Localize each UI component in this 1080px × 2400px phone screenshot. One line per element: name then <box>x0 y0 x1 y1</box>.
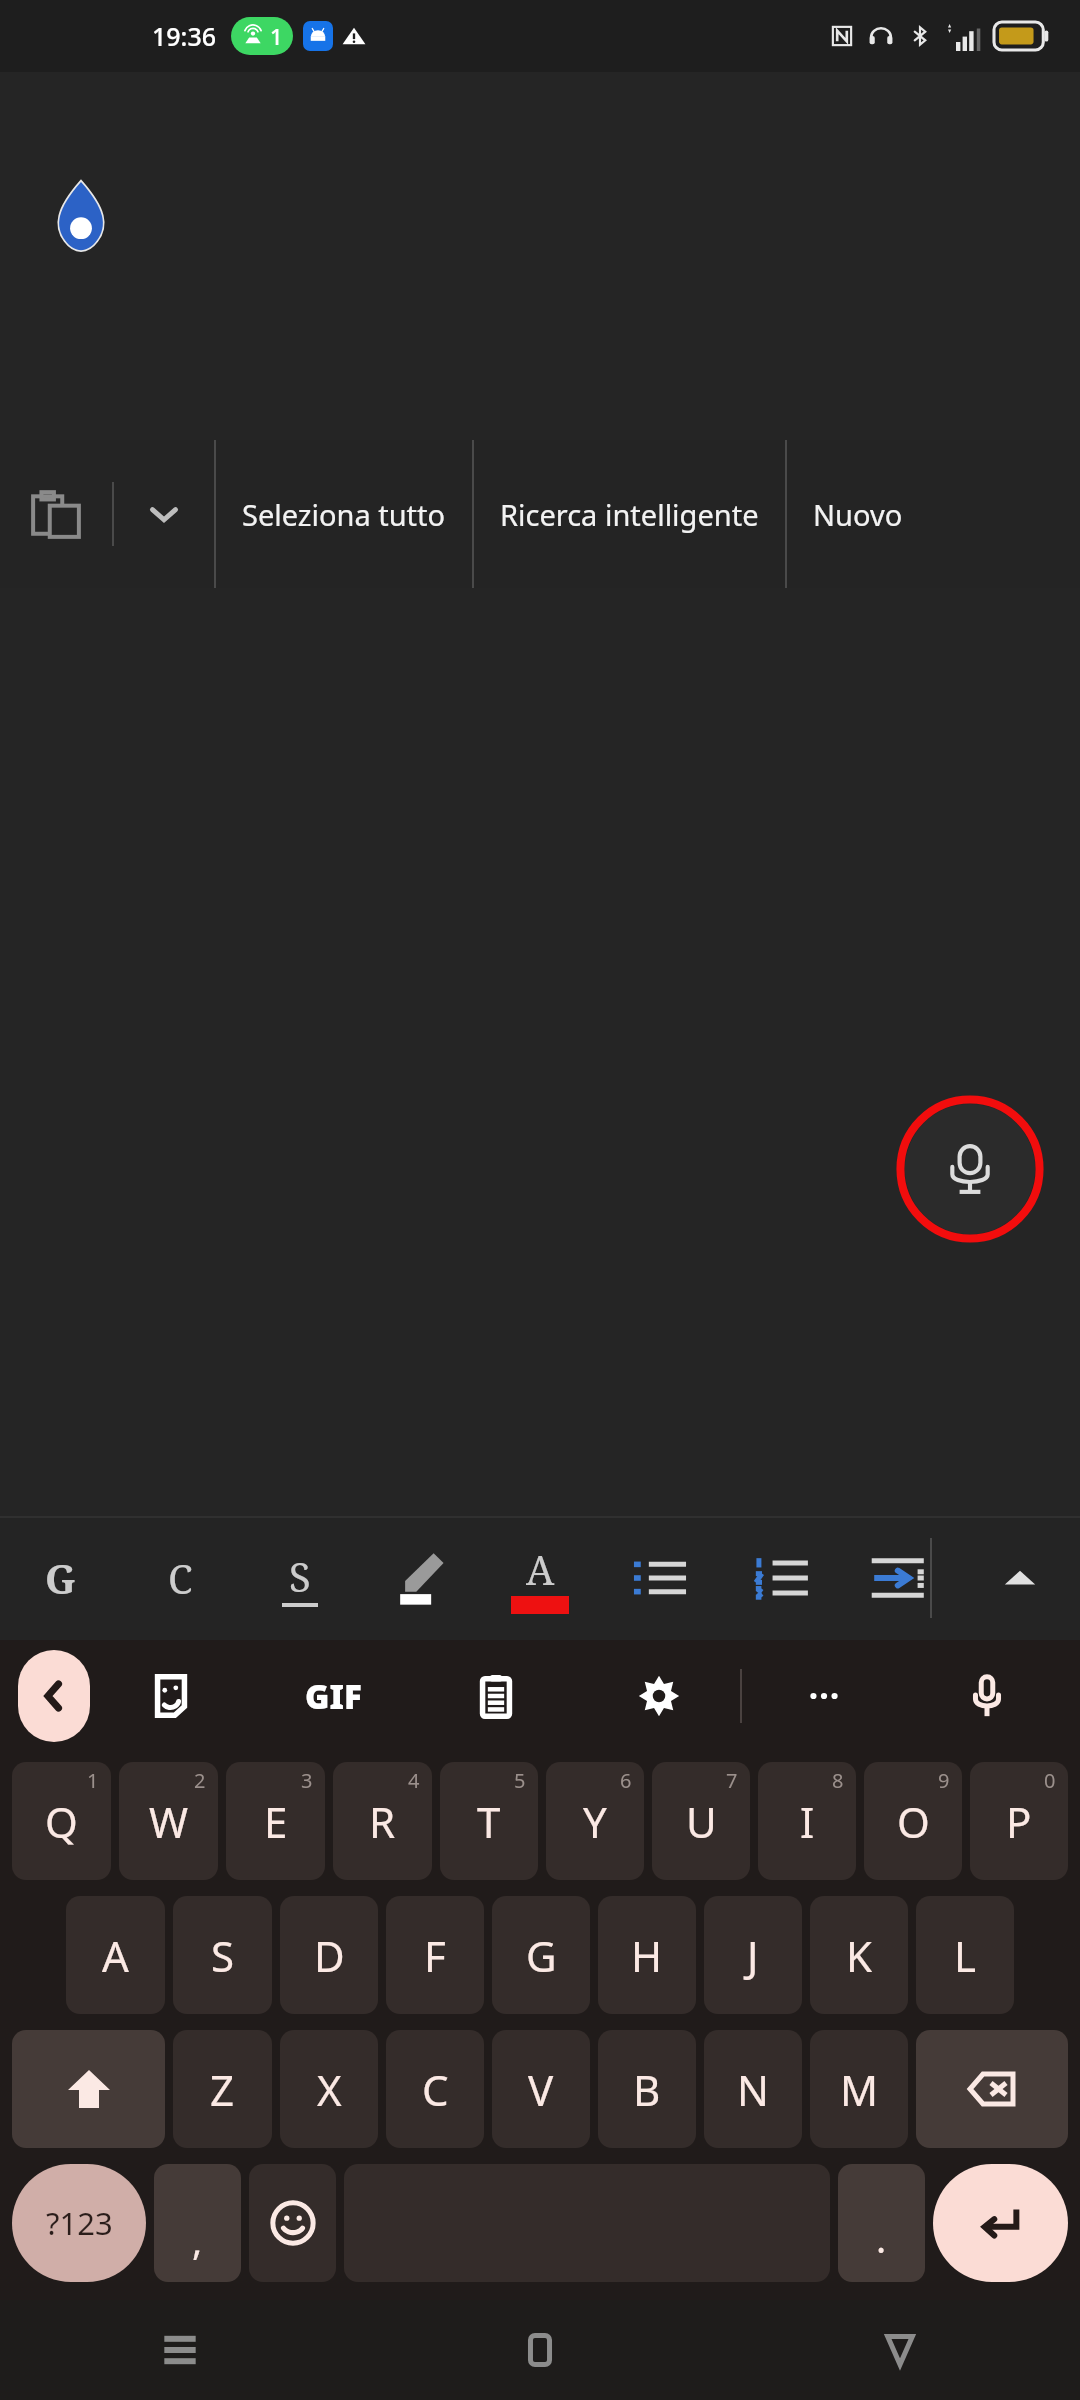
staticText: E <box>264 1793 288 1850</box>
button[interactable]: Voice typing <box>905 1640 1068 1752</box>
button[interactable]: Stickers <box>90 1640 252 1752</box>
button[interactable]: Seleziona tutto <box>216 440 472 588</box>
button[interactable]: Enter <box>933 2164 1068 2282</box>
button[interactable]: Format <box>840 1516 960 1640</box>
staticText: Z <box>210 2061 235 2118</box>
staticText: GIF <box>305 1674 362 1719</box>
button[interactable]: J <box>704 1896 802 2014</box>
button[interactable]: X <box>280 2030 378 2148</box>
button[interactable]: 4 <box>333 1762 432 1880</box>
button[interactable]: 9 <box>864 1762 962 1880</box>
button[interactable]: Z <box>173 2030 272 2148</box>
button[interactable]: S <box>173 1896 272 2014</box>
button[interactable]: Back <box>18 1650 90 1742</box>
button[interactable]: Format <box>480 1516 600 1640</box>
button[interactable]: Emoji <box>249 2164 336 2282</box>
staticText: C <box>422 2061 449 2118</box>
button[interactable]: Shift <box>12 2030 165 2148</box>
button[interactable]: Paste <box>0 440 112 588</box>
button[interactable]: K <box>810 1896 908 2014</box>
button[interactable]: Format <box>120 1516 240 1640</box>
button[interactable]: L <box>916 1896 1014 2014</box>
button[interactable]: B <box>598 2030 696 2148</box>
staticText: U <box>686 1793 717 1850</box>
button[interactable]: Format <box>600 1516 720 1640</box>
staticText: T <box>477 1793 501 1850</box>
button[interactable]: 2 <box>119 1762 218 1880</box>
staticText: L <box>954 1927 977 1984</box>
staticText: 4 <box>408 1767 420 1794</box>
button[interactable]: , <box>154 2164 241 2282</box>
button[interactable]: A <box>66 1896 165 2014</box>
staticText: K <box>846 1927 872 1984</box>
button[interactable]: Home <box>360 2300 720 2400</box>
button[interactable]: Format <box>720 1516 840 1640</box>
button[interactable]: Settings <box>577 1640 740 1752</box>
staticText: 5 <box>514 1767 526 1794</box>
button[interactable]: Backspace <box>916 2030 1068 2148</box>
staticText: S <box>289 1549 311 1603</box>
staticText: W <box>149 1793 189 1850</box>
button[interactable]: 6 <box>546 1762 644 1880</box>
staticText: 1 <box>270 21 283 51</box>
button[interactable]: 8 <box>758 1762 856 1880</box>
staticText: S <box>211 1927 235 1984</box>
button[interactable]: Ricerca intelligente <box>474 440 785 588</box>
staticText: 7 <box>726 1767 738 1794</box>
staticText: A <box>102 1927 129 1984</box>
button[interactable]: More paste options <box>114 440 214 588</box>
staticText: 19:36 <box>152 19 217 53</box>
staticText: Q <box>45 1793 78 1850</box>
button[interactable]: D <box>280 1896 378 2014</box>
staticText: V <box>528 2061 554 2118</box>
staticText: 2 <box>194 1767 206 1794</box>
button[interactable]: Format <box>240 1516 360 1640</box>
button[interactable]: H <box>598 1896 696 2014</box>
button[interactable]: C <box>386 2030 484 2148</box>
staticText: Nuovo commento <box>813 495 1054 534</box>
staticText: . <box>876 2212 887 2264</box>
staticText: Seleziona tutto <box>242 495 446 534</box>
button[interactable]: GIF <box>252 1640 414 1752</box>
button[interactable]: Format <box>360 1516 480 1640</box>
button[interactable]: Format <box>960 1516 1080 1640</box>
button[interactable]: N <box>704 2030 802 2148</box>
staticText: J <box>747 1927 759 1984</box>
button[interactable]: Nuovo commento <box>787 440 1080 588</box>
staticText: R <box>369 1793 396 1850</box>
button[interactable]: 0 <box>970 1762 1068 1880</box>
staticText: 1 <box>87 1767 99 1794</box>
staticText: M <box>840 2061 879 2118</box>
button[interactable]: 3 <box>226 1762 325 1880</box>
button[interactable]: 5 <box>440 1762 538 1880</box>
button[interactable]: 7 <box>652 1762 750 1880</box>
button[interactable]: ?123 <box>12 2164 146 2282</box>
staticText: 3 <box>301 1767 313 1794</box>
button[interactable]: G <box>492 1896 590 2014</box>
staticText: X <box>317 2061 342 2118</box>
staticText: H <box>631 1927 663 1984</box>
staticText: D <box>314 1927 345 1984</box>
button[interactable]: Voice input <box>896 1095 1044 1243</box>
button[interactable]: Back <box>720 2300 1080 2400</box>
staticText: O <box>897 1793 930 1850</box>
button[interactable]: Clipboard <box>414 1640 577 1752</box>
staticText: G <box>526 1927 557 1984</box>
staticText: I <box>800 1793 815 1850</box>
button[interactable]: Recents <box>0 2300 360 2400</box>
staticText: , <box>192 2214 203 2266</box>
staticText: 9 <box>938 1767 950 1794</box>
button[interactable]: 1 <box>12 1762 111 1880</box>
button[interactable]: . <box>838 2164 925 2282</box>
button[interactable]: F <box>386 1896 484 2014</box>
staticText: 8 <box>832 1767 844 1794</box>
button[interactable]: M <box>810 2030 908 2148</box>
button[interactable]: V <box>492 2030 590 2148</box>
staticText: C <box>168 1551 193 1605</box>
button[interactable]: Format <box>0 1516 120 1640</box>
staticText: N <box>737 2061 769 2118</box>
staticText: Y <box>583 1793 607 1850</box>
staticText: ?123 <box>46 2202 113 2244</box>
button[interactable]: More options <box>742 1640 905 1752</box>
